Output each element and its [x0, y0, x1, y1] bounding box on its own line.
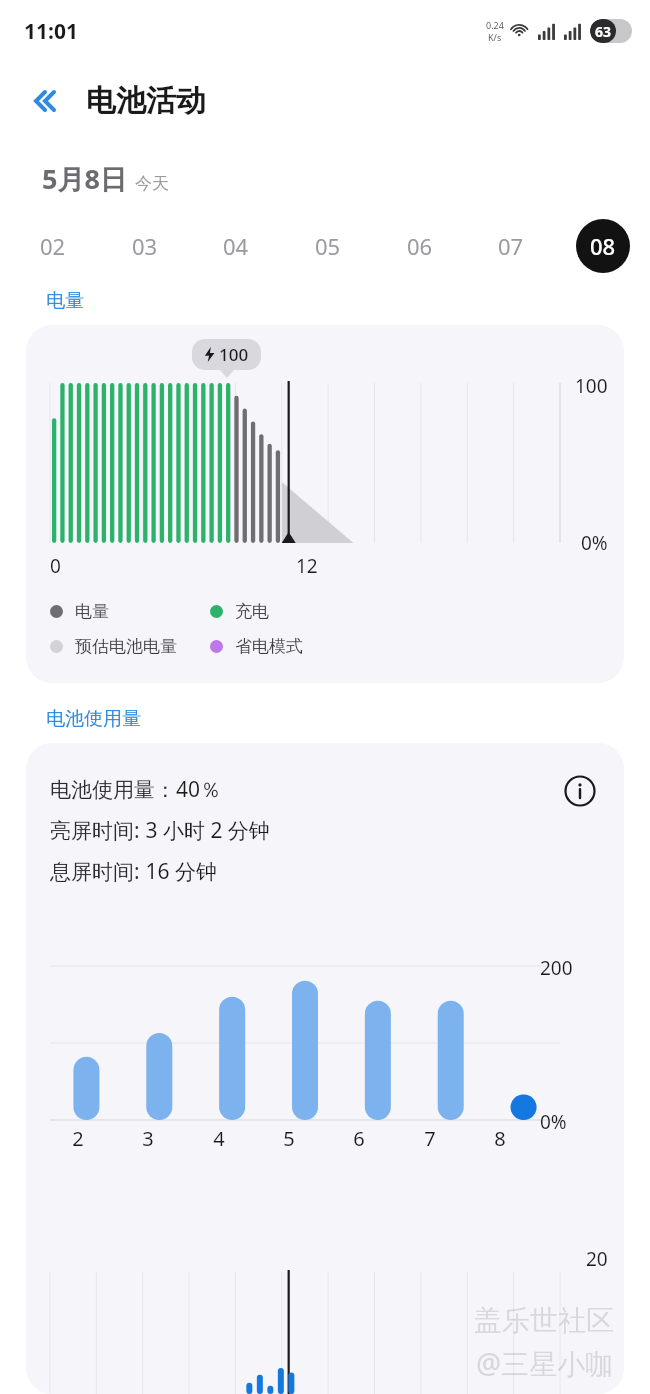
button[interactable]: 02 — [26, 219, 80, 273]
button[interactable]: 充电 — [210, 601, 370, 622]
staticText: 40％ — [176, 775, 222, 804]
staticText: 7 — [424, 1125, 436, 1152]
staticText: 16 分钟 — [140, 857, 217, 886]
button[interactable]: 电量 — [50, 601, 210, 622]
staticText: 100 — [219, 343, 249, 366]
button[interactable]: 预估电池电量 — [50, 636, 210, 657]
staticText: 4 — [213, 1125, 225, 1152]
staticText: 预估电池电量 — [75, 636, 177, 657]
staticText: 电池使用量： — [50, 777, 176, 803]
staticText: 8 — [494, 1125, 506, 1152]
staticText: 03 — [132, 231, 158, 261]
staticText: 08 — [590, 231, 616, 261]
staticText: 04 — [223, 231, 249, 261]
staticText: 0% — [581, 530, 608, 556]
staticText: 0.24 — [486, 19, 504, 31]
button[interactable]: 07 — [484, 219, 538, 273]
staticText: 6 — [353, 1125, 365, 1152]
staticText: 5 — [283, 1125, 295, 1152]
button[interactable]: 03 — [118, 219, 172, 273]
staticText: 20 — [586, 1246, 608, 1272]
staticText: 电池活动 — [86, 82, 206, 120]
staticText: 11:01 — [24, 17, 78, 46]
button[interactable]: 06 — [393, 219, 447, 273]
staticText: 0 — [50, 553, 61, 579]
staticText: 5月8日 — [42, 160, 127, 197]
staticText: 100 — [575, 373, 608, 399]
staticText: 息屏时间: — [50, 857, 140, 886]
button[interactable]: 08 — [576, 219, 630, 273]
staticText: 63 — [595, 22, 612, 41]
staticText: 充电 — [235, 601, 269, 622]
button[interactable]: 05 — [301, 219, 355, 273]
button[interactable]: 100 — [26, 325, 624, 683]
staticText: 电量 — [75, 601, 109, 622]
staticText: 06 — [407, 231, 433, 261]
button[interactable]: 电池使用量： — [26, 743, 624, 1394]
button[interactable]: 04 — [209, 219, 263, 273]
staticText: 0% — [540, 1109, 567, 1135]
staticText: 12 — [296, 553, 318, 579]
staticText: 3 — [142, 1125, 154, 1152]
staticText: @三星小咖 — [476, 1344, 614, 1382]
staticText: 电池使用量 — [46, 707, 141, 731]
staticText: 200 — [540, 955, 573, 981]
button[interactable]: 省电模式 — [210, 636, 370, 657]
staticText: 今天 — [135, 173, 169, 194]
staticText: 07 — [498, 231, 524, 261]
staticText: 省电模式 — [235, 636, 303, 657]
staticText: 2 — [72, 1125, 84, 1152]
button[interactable]: Back — [24, 77, 72, 125]
staticText: 02 — [40, 231, 66, 261]
staticText: 电量 — [46, 289, 84, 313]
staticText: K/s — [488, 31, 502, 43]
staticText: 05 — [315, 231, 341, 261]
button[interactable]: Information — [560, 771, 600, 811]
staticText: 3 小时 2 分钟 — [140, 816, 270, 845]
staticText: 亮屏时间: — [50, 816, 140, 845]
staticText: 盖乐世社区 — [474, 1303, 614, 1338]
